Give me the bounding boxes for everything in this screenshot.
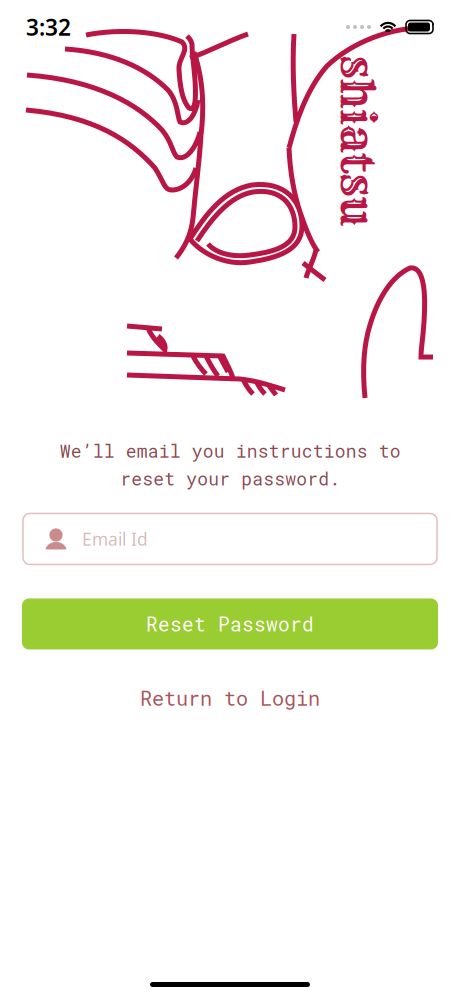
staticText: Return to Login (140, 684, 320, 711)
button[interactable]: Reset Password (0, 598, 460, 649)
staticText: We’ll email you instructions to reset yo… (59, 439, 400, 490)
staticText: Reset Password (146, 611, 314, 637)
button[interactable]: Return to Login (120, 675, 340, 720)
staticText: shiatsu (240, 145, 412, 201)
staticText: Email Id (82, 527, 148, 550)
staticText: 3:32 (26, 12, 71, 42)
